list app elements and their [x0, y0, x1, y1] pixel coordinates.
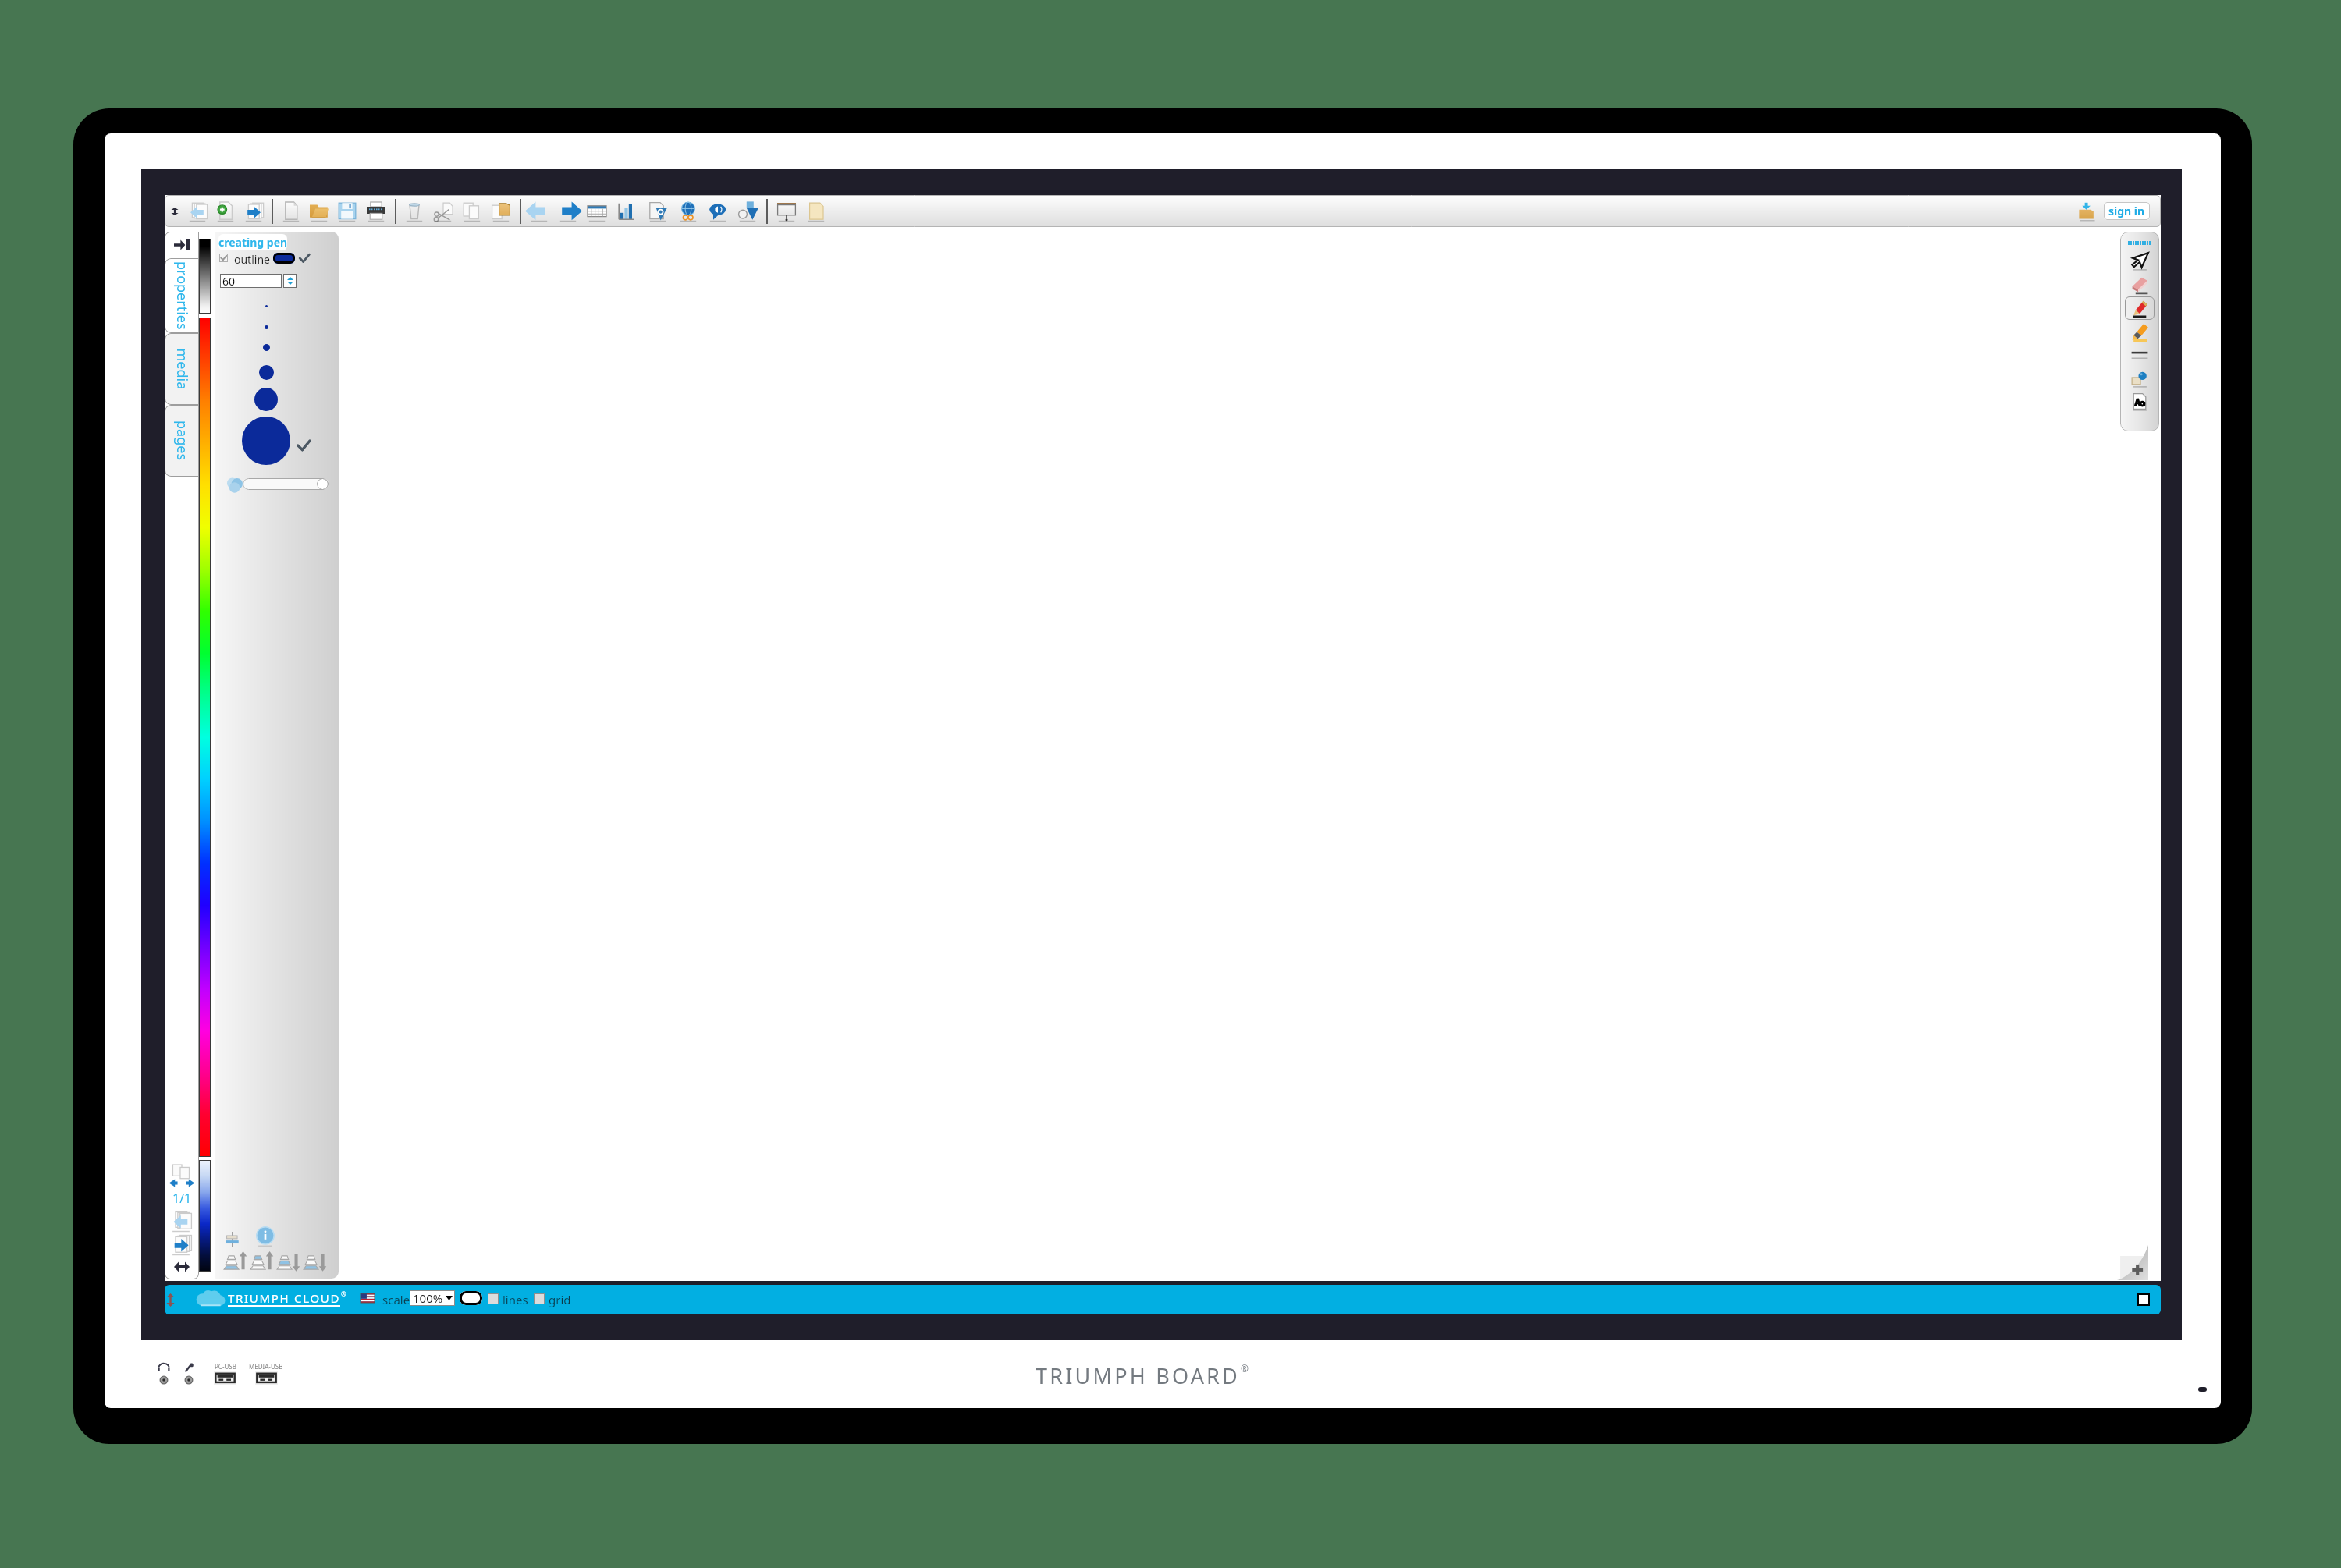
button[interactable]: Download	[2075, 199, 2099, 223]
button[interactable]: Pen size 3	[257, 338, 275, 357]
button[interactable]: Pen	[2125, 296, 2155, 320]
button[interactable]: Pen size 4	[254, 360, 279, 385]
button[interactable]: Note	[801, 195, 831, 227]
staticText: 100%	[413, 1290, 443, 1306]
button[interactable]: Resize panel	[174, 1261, 190, 1272]
button[interactable]: Select	[2125, 250, 2155, 273]
staticText: outline	[234, 252, 270, 267]
button[interactable]	[165, 405, 199, 477]
button[interactable]: Move page	[169, 1163, 195, 1190]
button[interactable]: Fill colour	[2125, 367, 2155, 390]
button[interactable]: Line style	[2125, 343, 2155, 367]
button[interactable]: Chart	[612, 195, 642, 227]
button[interactable]: Background colour	[460, 1291, 482, 1305]
button[interactable]: Move toolbar	[166, 195, 183, 227]
button[interactable]: Layer action 2	[247, 1247, 274, 1272]
button[interactable]	[165, 258, 199, 333]
button[interactable]: Show lines	[488, 1293, 499, 1304]
staticText: ®	[1241, 1362, 1249, 1375]
button[interactable]: Redo	[553, 195, 582, 227]
button[interactable]: Cut	[428, 195, 458, 227]
button[interactable]: New	[277, 195, 305, 227]
button[interactable]: Show grid	[534, 1293, 545, 1304]
button[interactable]: Collapse panel	[165, 232, 199, 258]
button[interactable]: Pen size 5	[249, 382, 283, 417]
staticText: MEDIA-USB	[249, 1362, 283, 1371]
button[interactable]: Pen size 2	[257, 318, 275, 336]
button[interactable]: Adjust size	[283, 274, 297, 288]
staticText: lines	[503, 1292, 528, 1307]
button[interactable]: Align	[222, 1229, 244, 1250]
button[interactable]: Copy	[458, 195, 486, 227]
button[interactable]: Previous page	[169, 1208, 194, 1233]
button[interactable]: Layer action 3	[274, 1247, 300, 1272]
button[interactable]: Full screen	[2137, 1293, 2150, 1306]
button[interactable]: Undo	[525, 195, 553, 227]
button[interactable]: Presentation	[772, 195, 801, 227]
staticText: 1/1	[172, 1190, 192, 1207]
button[interactable]: Add page	[2112, 1243, 2148, 1280]
staticText: ®	[341, 1290, 346, 1298]
button[interactable]: Shapes	[732, 195, 762, 227]
staticText: TRIUMPH BOARD	[1036, 1361, 1241, 1390]
staticText: sign in	[2108, 204, 2145, 218]
button[interactable]: Print	[361, 195, 391, 227]
button[interactable]: Previous page	[183, 195, 211, 227]
button[interactable]: Table	[582, 195, 612, 227]
staticText: 60	[222, 274, 236, 288]
button[interactable]: Next page	[169, 1232, 194, 1257]
button[interactable]	[165, 333, 199, 405]
button[interactable]: Pen size 6	[236, 411, 296, 470]
button[interactable]: Opacity	[243, 478, 329, 490]
button[interactable]: Open	[305, 195, 333, 227]
button[interactable]: Web link	[673, 195, 703, 227]
button[interactable]: Sound	[703, 195, 732, 227]
button[interactable]: Text	[2125, 390, 2155, 413]
button[interactable]: Delete	[400, 195, 428, 227]
button[interactable]: sign in	[2104, 202, 2150, 220]
staticText: creating pen	[218, 235, 287, 250]
button[interactable]: Layer action 4	[300, 1247, 327, 1272]
button[interactable]: Paste	[486, 195, 516, 227]
button[interactable]: 100%	[410, 1290, 455, 1306]
staticText: TRIUMPH CLOUD	[228, 1290, 341, 1306]
button[interactable]: Pen size 1	[257, 296, 275, 315]
button[interactable]: Next page	[240, 195, 268, 227]
button[interactable]: Outline colour	[273, 253, 295, 264]
button[interactable]: New page	[211, 195, 240, 227]
button[interactable]: Highlighter	[2125, 320, 2155, 343]
button[interactable]: Link file	[642, 195, 673, 227]
button[interactable]: Eraser	[2125, 273, 2155, 296]
button[interactable]: 60	[220, 274, 282, 288]
button[interactable]: Save	[333, 195, 361, 227]
button[interactable]: Outline	[219, 254, 228, 262]
button[interactable]: Layer action 1	[221, 1247, 247, 1272]
staticText: grid	[549, 1292, 571, 1307]
button[interactable]: Info	[254, 1226, 276, 1247]
staticText: scale	[382, 1292, 410, 1307]
button[interactable]: creating pen	[218, 234, 287, 250]
staticText: PC-USB	[215, 1362, 236, 1371]
